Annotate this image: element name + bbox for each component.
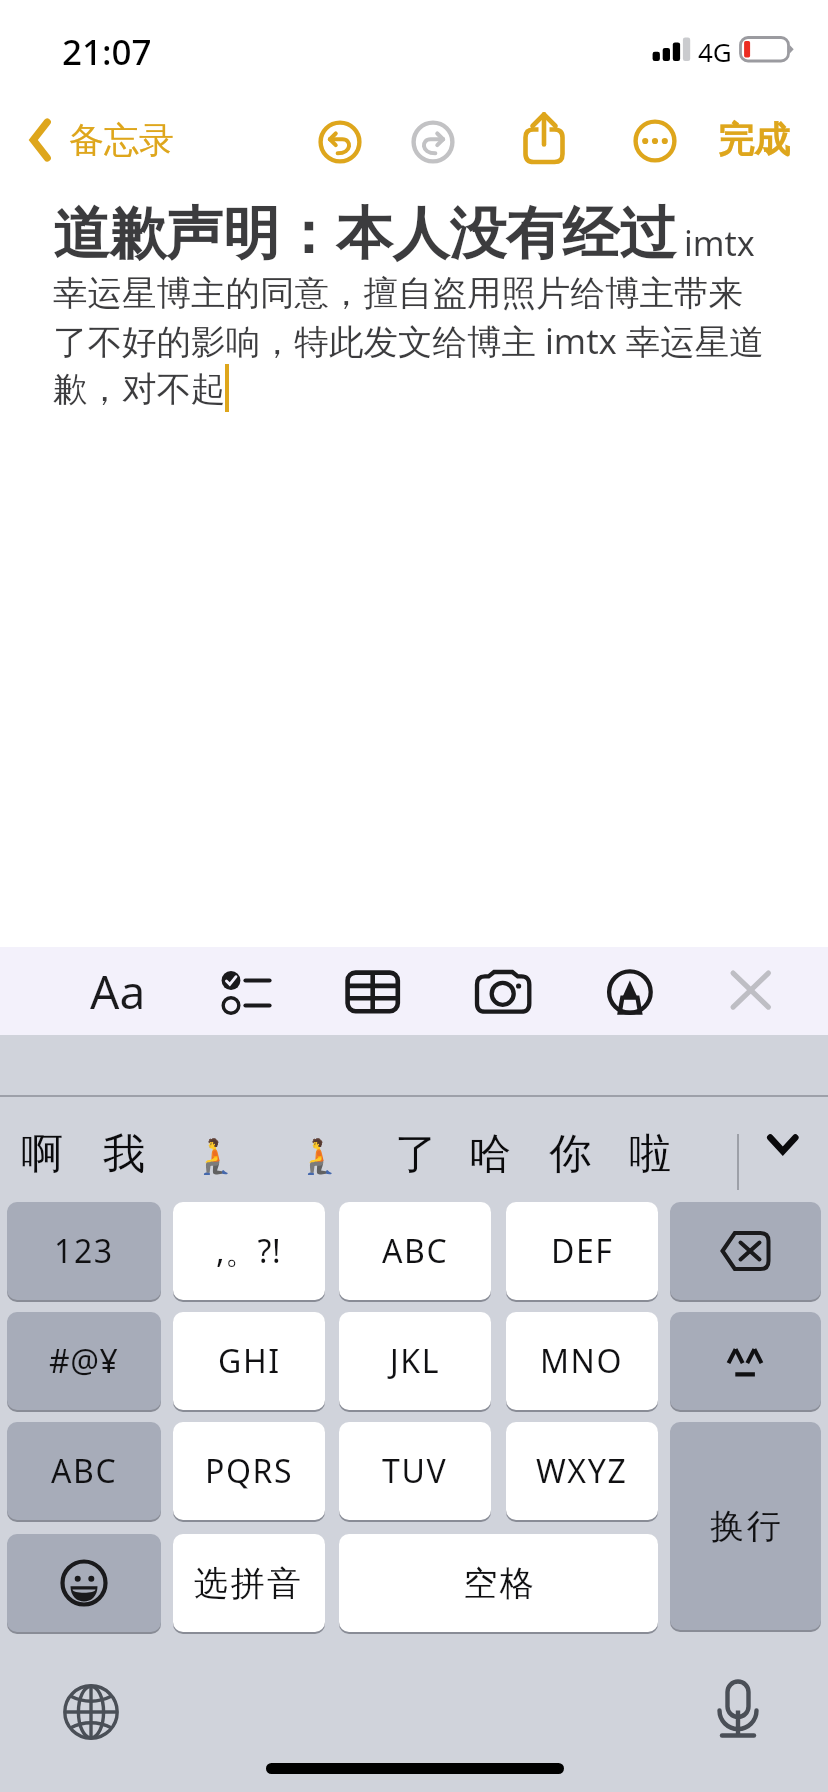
staticText: 123 — [54, 1229, 114, 1273]
button[interactable]: ,。?! — [173, 1202, 325, 1300]
button[interactable]: 啦 — [623, 1122, 677, 1187]
staticText: ,。?! — [216, 1229, 282, 1273]
staticText: 了 — [395, 1128, 437, 1181]
staticText: 幸运星博主的同意，擅自盗用照片给博主带来了不好的影响，特此发文给博主 imtx … — [53, 272, 769, 411]
button[interactable]: 换行 — [670, 1422, 821, 1630]
button[interactable]: 啊 — [15, 1122, 69, 1187]
staticText: DEF — [551, 1229, 614, 1273]
staticText: TUV — [382, 1449, 448, 1493]
staticText: ABC — [382, 1229, 449, 1273]
button[interactable]: Markup — [596, 955, 666, 1025]
staticText: GHI — [218, 1339, 281, 1383]
button[interactable]: 我 — [97, 1122, 151, 1187]
staticText: 🧎 — [298, 1136, 341, 1176]
button[interactable]: 哈 — [463, 1122, 517, 1187]
button[interactable]: ABC — [339, 1202, 491, 1300]
button[interactable]: Dictation — [706, 1674, 770, 1738]
staticText: MNO — [540, 1339, 624, 1383]
button[interactable] — [670, 1312, 821, 1410]
button[interactable]: 空格 — [339, 1534, 658, 1632]
staticText: 啦 — [629, 1128, 671, 1181]
button[interactable]: DEF — [506, 1202, 658, 1300]
button[interactable]: Hide keyboard — [757, 1083, 809, 1193]
button[interactable]: 选拼音 — [173, 1534, 325, 1632]
button[interactable]: Share — [520, 104, 568, 164]
staticText: 21:07 — [62, 28, 152, 76]
button[interactable]: 123 — [7, 1202, 161, 1300]
button[interactable]: GHI — [173, 1312, 325, 1410]
button[interactable]: Switch language — [59, 1680, 123, 1744]
button[interactable]: MNO — [506, 1312, 658, 1410]
button[interactable]: ABC — [7, 1422, 161, 1520]
button[interactable]: Redo — [411, 120, 455, 164]
button[interactable]: 了 — [389, 1122, 443, 1187]
button[interactable]: Close — [722, 955, 792, 1025]
staticText: 完成 — [718, 117, 790, 162]
button[interactable]: More options — [633, 119, 677, 163]
staticText: WXYZ — [536, 1449, 628, 1493]
staticText: 哈 — [469, 1128, 511, 1181]
staticText: Aa — [90, 960, 146, 1023]
staticText: JKL — [390, 1339, 441, 1383]
button[interactable]: 你 — [543, 1122, 597, 1187]
staticText: ABC — [51, 1449, 118, 1493]
button[interactable]: Table — [340, 955, 410, 1025]
staticText: PQRS — [205, 1449, 294, 1493]
staticText: 空格 — [462, 1562, 535, 1605]
staticText: 🧎 — [194, 1136, 237, 1176]
button[interactable]: Text format — [78, 956, 158, 1026]
button[interactable] — [7, 1534, 161, 1632]
button[interactable]: 🧎 — [292, 1130, 347, 1182]
staticText: 备忘录 — [69, 118, 174, 162]
staticText: imtx — [684, 220, 755, 266]
button[interactable]: TUV — [339, 1422, 491, 1520]
staticText: 道歉声明：本人没有经过 — [53, 199, 676, 270]
button[interactable]: 完成 — [704, 106, 804, 172]
staticText: #@¥ — [49, 1339, 119, 1383]
staticText: 啊 — [21, 1128, 63, 1181]
staticText: 换行 — [709, 1505, 782, 1548]
staticText: 4G — [698, 34, 732, 69]
button[interactable]: JKL — [339, 1312, 491, 1410]
button[interactable]: Checklist — [198, 955, 268, 1025]
staticText: 你 — [549, 1128, 591, 1181]
button[interactable]: 🧎 — [188, 1130, 243, 1182]
button[interactable]: Camera — [468, 955, 538, 1025]
button[interactable]: WXYZ — [506, 1422, 658, 1520]
button[interactable]: 备忘录 — [21, 107, 180, 173]
staticText: 我 — [103, 1128, 145, 1181]
button[interactable] — [670, 1202, 821, 1300]
button[interactable]: #@¥ — [7, 1312, 161, 1410]
button[interactable]: Undo — [318, 120, 362, 164]
button[interactable]: PQRS — [173, 1422, 325, 1520]
staticText: 选拼音 — [194, 1562, 304, 1605]
